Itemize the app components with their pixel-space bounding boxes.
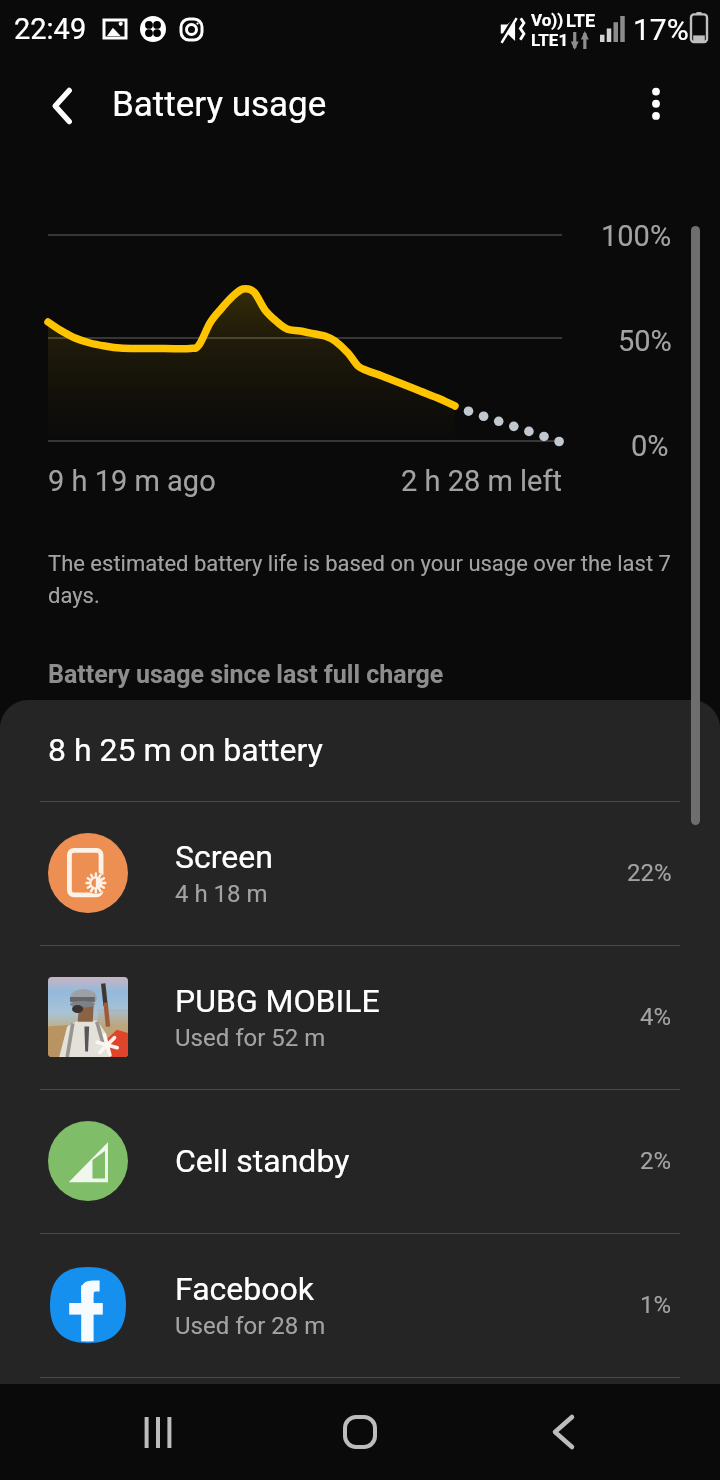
staticText: Used for 52 m bbox=[175, 1024, 326, 1052]
button[interactable]: Cell standby bbox=[0, 1089, 720, 1233]
button[interactable]: More options bbox=[628, 76, 684, 132]
button[interactable]: Screen bbox=[0, 801, 720, 945]
staticText: Facebook bbox=[175, 1270, 314, 1308]
staticText: 4 h 18 m bbox=[175, 880, 268, 908]
button[interactable]: Home bbox=[315, 1387, 405, 1477]
staticText: Cell standby bbox=[175, 1142, 350, 1180]
staticText: LTE bbox=[566, 10, 596, 31]
staticText: The estimated battery life is based on y… bbox=[48, 551, 688, 608]
staticText: 100% bbox=[601, 219, 672, 253]
button[interactable]: Back bbox=[518, 1387, 608, 1477]
button[interactable]: Facebook bbox=[0, 1233, 720, 1377]
button[interactable]: PUBG MOBILE bbox=[0, 945, 720, 1089]
staticText: 4% bbox=[640, 1003, 672, 1031]
staticText: Used for 28 m bbox=[175, 1312, 326, 1340]
staticText: Battery usage bbox=[112, 84, 327, 125]
button[interactable]: Recent apps bbox=[113, 1387, 203, 1477]
staticText: 22% bbox=[627, 859, 672, 887]
staticText: 8 h 25 m on battery bbox=[48, 731, 323, 769]
staticText: Screen bbox=[175, 838, 273, 876]
button[interactable]: Navigate up bbox=[34, 76, 90, 132]
staticText: 2 h 28 m left bbox=[401, 464, 563, 498]
staticText: LTE1 bbox=[531, 30, 569, 50]
staticText: 0% bbox=[631, 429, 669, 463]
staticText: Battery usage since last full charge bbox=[48, 660, 444, 689]
staticText: 22:49 bbox=[14, 12, 87, 46]
staticText: 2% bbox=[640, 1147, 672, 1175]
staticText: 17% bbox=[633, 12, 689, 47]
staticText: Vo)) bbox=[531, 10, 564, 30]
staticText: 9 h 19 m ago bbox=[48, 464, 216, 498]
staticText: PUBG MOBILE bbox=[175, 982, 380, 1020]
staticText: 50% bbox=[618, 324, 672, 358]
staticText: 1% bbox=[640, 1291, 672, 1319]
